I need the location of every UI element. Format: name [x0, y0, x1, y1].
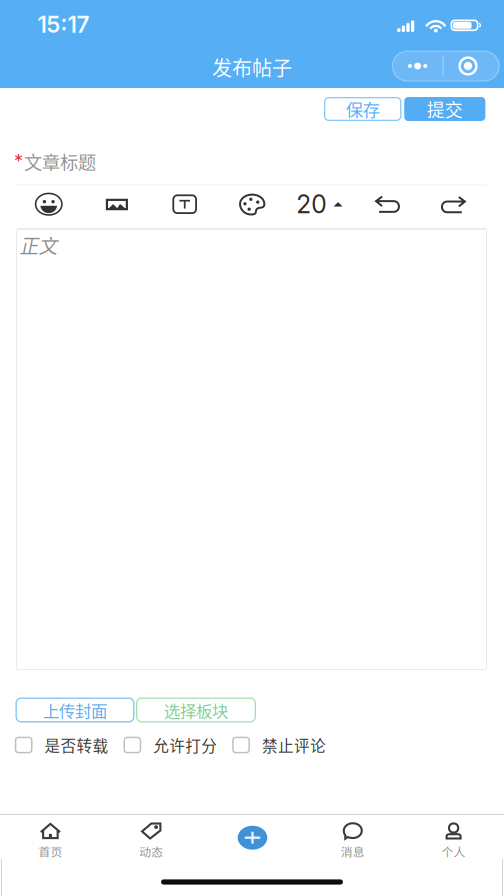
staticText: 文章标题	[24, 148, 96, 175]
staticText: 正文	[19, 231, 57, 259]
staticText: 动态	[139, 843, 163, 860]
button[interactable]: Undo	[375, 195, 399, 213]
button[interactable]: Text colour	[239, 193, 265, 215]
staticText: 首页	[38, 843, 62, 860]
staticText: 消息	[341, 843, 365, 860]
button[interactable]: 保存	[324, 97, 401, 121]
staticText: 保存	[346, 96, 380, 122]
button[interactable]: Insert image	[106, 199, 128, 210]
staticText: 20	[296, 189, 326, 219]
button[interactable]: Redo	[442, 196, 466, 213]
button[interactable]: Text style	[172, 194, 197, 214]
button[interactable]: 禁止评论	[232, 728, 326, 762]
button[interactable]: 选择板块	[136, 697, 256, 722]
staticText: 禁止评论	[262, 734, 326, 756]
staticText: 提交	[427, 96, 463, 122]
button[interactable]: 首页	[0, 815, 101, 859]
button[interactable]: 个人	[403, 815, 504, 859]
staticText: 15:17	[37, 11, 89, 38]
button[interactable]: Emoji	[35, 193, 63, 216]
staticText: 是否转载	[44, 734, 108, 756]
button[interactable]: 上传封面	[15, 697, 134, 722]
staticText: 选择板块	[164, 698, 228, 722]
staticText: 个人	[442, 843, 466, 860]
button[interactable]: Create post	[238, 826, 267, 850]
staticText: 上传封面	[43, 698, 107, 722]
button[interactable]: 允许打分	[123, 728, 217, 762]
button[interactable]: Font size 20	[295, 192, 343, 216]
staticText: 发布帖子	[212, 52, 292, 81]
button[interactable]: 动态	[101, 815, 202, 859]
button[interactable]: 消息	[302, 815, 403, 859]
button[interactable]: Mini program menu	[392, 51, 500, 82]
staticText: *	[14, 151, 23, 172]
button[interactable]: 是否转载	[15, 728, 108, 762]
button[interactable]: 提交	[404, 97, 485, 121]
staticText: 允许打分	[153, 734, 217, 756]
